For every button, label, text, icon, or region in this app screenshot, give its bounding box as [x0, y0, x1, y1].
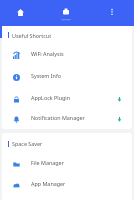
button[interactable]: Notification Manager	[2, 110, 132, 129]
button[interactable]: File Manager	[2, 154, 132, 175]
staticText: File Manager	[31, 159, 64, 166]
staticText: Notification Manager	[31, 114, 85, 121]
button[interactable]: Home	[0, 0, 40, 26]
button[interactable]: App Manager	[2, 175, 132, 196]
button[interactable]: System Info	[2, 66, 132, 88]
button[interactable]: Toolbox	[59, 0, 73, 26]
staticText: Space Saver	[12, 140, 43, 147]
staticText: AppLock Plugin	[31, 94, 71, 101]
button[interactable]: WiFi Analysis	[2, 44, 132, 66]
staticText: WiFi Analysis	[31, 50, 64, 57]
staticText: Useful Shortcut	[12, 32, 52, 39]
staticText: System Info	[31, 72, 61, 79]
staticText: App Manager	[31, 180, 66, 187]
button[interactable]: AppLock Plugin	[2, 88, 132, 110]
button[interactable]: More options	[103, 0, 121, 26]
